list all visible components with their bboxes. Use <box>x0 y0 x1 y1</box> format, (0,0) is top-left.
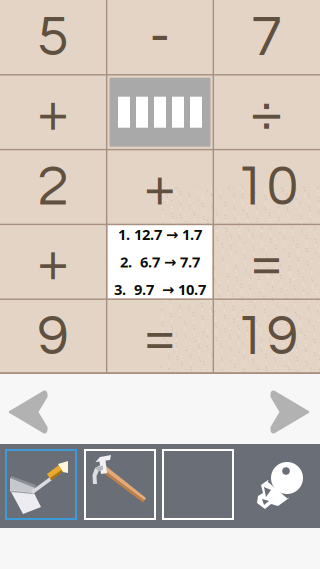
staticText: 19 <box>235 307 299 366</box>
staticText: = <box>251 232 283 291</box>
staticText: 7 <box>251 8 283 67</box>
staticText: + <box>37 83 69 142</box>
staticText: - <box>149 8 170 67</box>
button[interactable]: Trowel <box>6 450 76 519</box>
staticText: 5 <box>37 8 69 67</box>
button[interactable]: Pickaxe <box>85 450 155 519</box>
staticText: + <box>37 232 69 291</box>
staticText: + <box>144 157 176 217</box>
staticText: 3. 9.7 → 10.7 <box>114 279 206 299</box>
staticText: 10 <box>235 157 299 217</box>
button[interactable]: Previous <box>6 388 48 436</box>
button[interactable]: Next <box>270 388 312 436</box>
staticText: 2 <box>37 157 69 217</box>
staticText: = <box>144 307 176 366</box>
staticText: ÷ <box>251 83 283 142</box>
staticText: 2. 6.7 → 7.7 <box>120 252 200 272</box>
button[interactable]: Key <box>254 458 308 512</box>
staticText: 1. 12.7 → 1.7 <box>118 225 202 244</box>
button[interactable]: Empty slot <box>163 450 233 519</box>
staticText: 9 <box>37 307 69 366</box>
